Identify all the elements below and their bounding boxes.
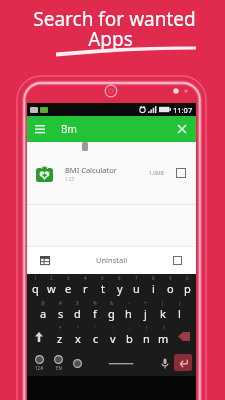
button[interactable]: Open navigation menu <box>27 116 196 142</box>
staticText: c <box>93 331 99 346</box>
button[interactable]: Clear search <box>174 121 190 137</box>
staticText: h <box>125 306 132 321</box>
button[interactable]: # <box>52 299 69 324</box>
staticText: 6 <box>118 275 121 281</box>
button[interactable]: Keyboard settings <box>69 351 85 375</box>
staticText: & <box>110 300 114 306</box>
button[interactable]: ' <box>87 324 104 349</box>
staticText: EN <box>56 365 62 371</box>
button[interactable]: ) <box>171 299 188 324</box>
staticText: b <box>126 331 133 346</box>
button[interactable]: 3 <box>60 274 77 299</box>
staticText: 11:07 <box>173 105 193 115</box>
staticText: ( <box>162 300 164 306</box>
button[interactable]: Uninstall <box>96 255 128 265</box>
staticText: ? <box>163 325 165 331</box>
staticText: " <box>77 325 79 331</box>
button[interactable]: Space <box>90 349 152 376</box>
staticText: 3 <box>67 275 70 281</box>
button[interactable]: 1 <box>27 274 43 299</box>
button[interactable]: ( <box>154 299 171 324</box>
staticText: 5 <box>101 275 104 281</box>
staticText: d <box>74 306 81 321</box>
button[interactable]: Enter <box>174 354 192 371</box>
staticText: ) <box>179 300 181 306</box>
staticText: 2 <box>50 275 53 281</box>
button[interactable]: Select all <box>173 256 182 265</box>
staticText: k <box>160 306 166 321</box>
staticText: % <box>93 300 97 306</box>
staticText: a <box>40 306 47 321</box>
staticText: 12# <box>35 365 44 371</box>
staticText: 8 <box>152 275 155 281</box>
staticText: 1.0MB <box>149 170 164 177</box>
staticText: # <box>59 300 62 306</box>
staticText: e <box>65 281 72 296</box>
staticText: : <box>112 325 114 331</box>
button[interactable]: Symbols keyboard <box>31 351 47 375</box>
staticText: f <box>93 306 97 321</box>
staticText: + <box>144 300 147 306</box>
staticText: Apps <box>88 26 133 52</box>
button[interactable]: Change view <box>38 253 52 267</box>
staticText: t <box>101 281 105 296</box>
staticText: ' <box>95 325 97 331</box>
staticText: $ <box>76 300 79 306</box>
staticText: p <box>184 281 191 296</box>
staticText: Bm <box>61 122 77 136</box>
button[interactable]: 2 <box>43 274 60 299</box>
staticText: Uninstall <box>96 255 128 265</box>
button[interactable]: % <box>86 299 103 324</box>
staticText: 4 <box>84 275 87 281</box>
button[interactable]: - <box>120 299 137 324</box>
button[interactable]: + <box>137 299 154 324</box>
button[interactable]: " <box>69 324 87 349</box>
button[interactable]: $ <box>69 299 86 324</box>
button[interactable]: ! <box>138 324 155 349</box>
staticText: w <box>47 281 56 296</box>
button[interactable]: BMI Calculator <box>27 142 196 204</box>
staticText: BMI Calculator <box>65 165 117 175</box>
button[interactable]: Select BMI Calculator <box>176 168 186 178</box>
staticText: q <box>32 281 39 296</box>
button[interactable]: 8 <box>145 274 162 299</box>
staticText: j <box>144 306 147 321</box>
button[interactable]: @ <box>35 299 52 324</box>
staticText: z <box>57 331 63 346</box>
staticText: n <box>143 331 150 346</box>
staticText: v <box>110 331 116 346</box>
button[interactable]: Shift <box>27 324 51 349</box>
staticText: l <box>178 306 181 321</box>
button[interactable]: Change input language <box>50 351 66 375</box>
button[interactable]: 7 <box>128 274 145 299</box>
staticText: o <box>167 281 174 296</box>
button[interactable]: 6 <box>111 274 128 299</box>
staticText: 1 <box>34 275 37 281</box>
staticText: - <box>128 300 130 306</box>
staticText: m <box>158 331 169 346</box>
button[interactable]: : <box>104 324 121 349</box>
staticText: u <box>133 281 140 296</box>
staticText: g <box>108 306 115 321</box>
staticText: s <box>58 306 64 321</box>
staticText: ! <box>146 325 148 331</box>
staticText: * <box>59 325 62 331</box>
button[interactable]: 9 <box>162 274 179 299</box>
button[interactable]: ; <box>121 324 138 349</box>
staticText: 0 <box>186 275 189 281</box>
staticText: Search for wanted <box>33 6 196 32</box>
button[interactable]: & <box>103 299 120 324</box>
button[interactable]: 4 <box>77 274 94 299</box>
staticText: y <box>117 281 123 296</box>
button[interactable]: 5 <box>94 274 111 299</box>
button[interactable]: Open navigation menu <box>32 121 48 137</box>
staticText: x <box>75 331 81 346</box>
button[interactable]: Voice input <box>158 353 172 373</box>
staticText: 7 <box>135 275 138 281</box>
button[interactable]: * <box>51 324 69 349</box>
button[interactable]: Backspace <box>172 324 196 349</box>
button[interactable]: ? <box>155 324 172 349</box>
button[interactable]: 0 <box>179 274 196 299</box>
staticText: i <box>152 281 155 296</box>
staticText: ; <box>129 325 131 331</box>
